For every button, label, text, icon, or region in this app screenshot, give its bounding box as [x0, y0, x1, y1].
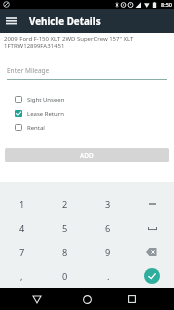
- button[interactable]: Lease Return: [15, 110, 64, 117]
- button[interactable]: [130, 240, 174, 264]
- button[interactable]: .: [86, 264, 130, 288]
- staticText: 6: [105, 222, 111, 235]
- button[interactable]: Sight Unseen: [15, 96, 65, 103]
- staticText: 9: [105, 246, 111, 259]
- button[interactable]: ,: [0, 264, 43, 288]
- staticText: 0: [62, 270, 68, 283]
- staticText: Rental: [27, 124, 45, 131]
- button[interactable]: 0: [43, 264, 86, 288]
- staticText: .: [107, 270, 110, 283]
- staticText: Sight Unseen: [27, 96, 65, 103]
- button[interactable]: 7: [0, 240, 43, 264]
- button[interactable]: [118, 288, 146, 310]
- button[interactable]: 9: [86, 240, 130, 264]
- button[interactable]: 5: [43, 216, 86, 240]
- staticText: Vehicle Details: [29, 15, 101, 28]
- button[interactable]: 2: [43, 192, 86, 216]
- button[interactable]: [73, 288, 101, 310]
- button[interactable]: ADD: [5, 148, 169, 162]
- staticText: 7: [19, 246, 25, 259]
- staticText: Enter Mileage: [7, 66, 50, 75]
- button[interactable]: [130, 216, 174, 240]
- button[interactable]: 6: [86, 216, 130, 240]
- staticText: 2009 Ford F-150 XLT 2WD SuperCrew 157" X…: [4, 35, 134, 50]
- staticText: 1: [19, 198, 25, 211]
- staticText: 8: [62, 246, 68, 259]
- button[interactable]: 1: [0, 192, 43, 216]
- button[interactable]: [130, 192, 174, 216]
- button[interactable]: 4: [0, 216, 43, 240]
- staticText: Lease Return: [27, 110, 64, 117]
- staticText: ADD: [80, 151, 94, 160]
- button[interactable]: [130, 264, 174, 288]
- staticText: 8:50: [161, 1, 172, 8]
- button[interactable]: [0, 10, 22, 32]
- staticText: 5: [62, 222, 68, 235]
- staticText: 3: [105, 198, 111, 211]
- button[interactable]: 3: [86, 192, 130, 216]
- button[interactable]: 8: [43, 240, 86, 264]
- staticText: 4: [19, 222, 25, 235]
- button[interactable]: Rental: [15, 124, 45, 131]
- staticText: 2: [62, 198, 68, 211]
- staticText: ,: [20, 270, 23, 283]
- button[interactable]: [23, 288, 51, 310]
